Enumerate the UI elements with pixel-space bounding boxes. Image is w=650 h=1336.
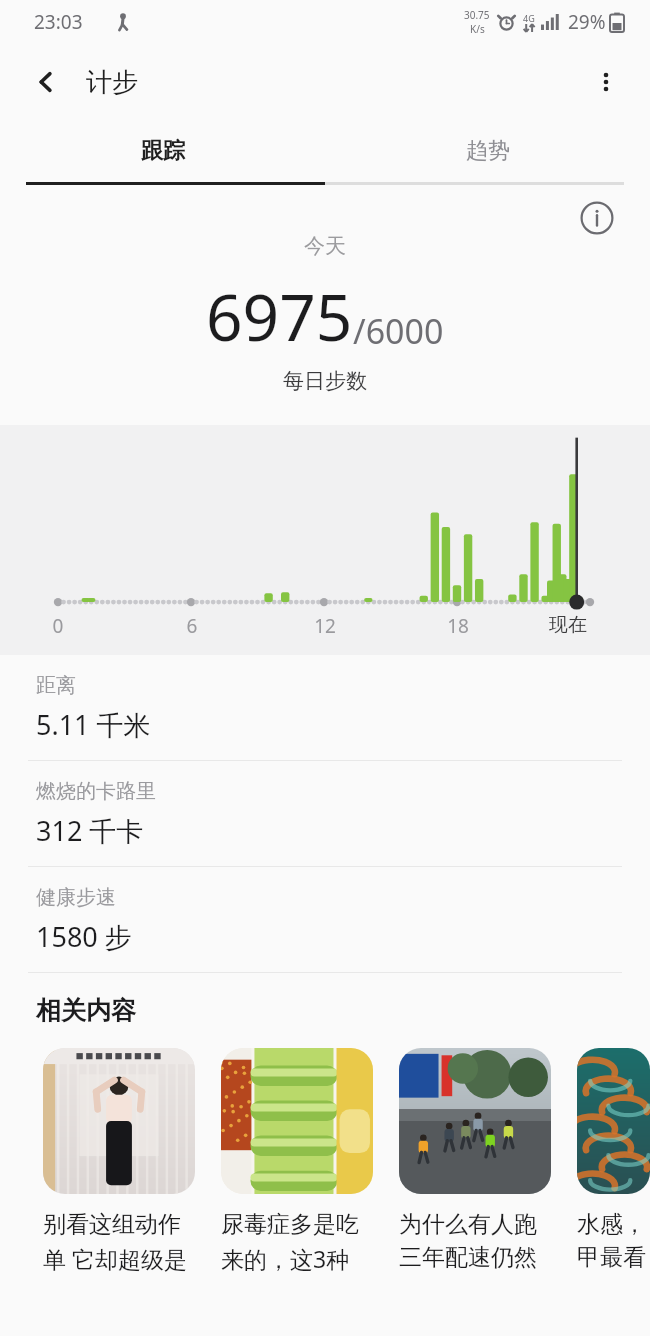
staticText: 距离: [36, 673, 76, 698]
button[interactable]: 趋势: [325, 120, 650, 182]
staticText: 6: [166, 613, 218, 639]
staticText: 5.11 千米: [36, 706, 151, 743]
staticText: 18: [432, 613, 484, 639]
button[interactable]: Information: [576, 197, 618, 239]
staticText: 计步: [86, 66, 138, 99]
button[interactable]: 健康步速: [0, 867, 650, 972]
staticText: 甲最看重: [577, 1243, 650, 1272]
staticText: 每日步数: [283, 368, 367, 394]
staticText: 现在: [542, 613, 594, 637]
button[interactable]: 别看这组动作简: [43, 1048, 195, 1274]
staticText: /6000: [353, 308, 444, 354]
staticText: 23:03: [34, 9, 83, 35]
staticText: 来的，这3种: [221, 1243, 350, 1274]
button[interactable]: More options: [582, 58, 630, 106]
staticText: 单 它却超级是: [43, 1243, 187, 1274]
staticText: 三年配速仍然: [399, 1243, 537, 1272]
staticText: 今天: [304, 233, 346, 259]
staticText: K/s: [470, 22, 485, 36]
staticText: 4G: [523, 12, 535, 24]
button[interactable]: 燃烧的卡路里: [0, 761, 650, 866]
staticText: 为什么有人跑了: [399, 1210, 551, 1239]
staticText: 健康步速: [36, 885, 116, 910]
staticText: 趋势: [466, 137, 510, 165]
button[interactable]: 距离: [0, 655, 650, 760]
staticText: 1580 步: [36, 918, 132, 955]
staticText: 30.75: [464, 8, 490, 22]
button[interactable]: 跟踪: [0, 120, 325, 182]
staticText: 6975: [206, 273, 353, 360]
staticText: 燃烧的卡路里: [36, 779, 156, 804]
staticText: 跟踪: [141, 137, 185, 165]
staticText: 0: [32, 613, 84, 639]
staticText: 尿毒症多是吃出: [221, 1210, 373, 1239]
staticText: 水感，游: [577, 1210, 650, 1239]
staticText: 相关内容: [36, 995, 136, 1026]
staticText: 312 千卡: [36, 812, 144, 849]
staticText: 别看这组动作简: [43, 1210, 195, 1239]
staticText: 29%: [568, 9, 606, 35]
button[interactable]: Back: [22, 58, 70, 106]
button[interactable]: 为什么有人跑了: [399, 1048, 551, 1272]
button[interactable]: 水感，游: [577, 1048, 650, 1272]
button[interactable]: 尿毒症多是吃出: [221, 1048, 373, 1274]
staticText: 12: [299, 613, 351, 639]
